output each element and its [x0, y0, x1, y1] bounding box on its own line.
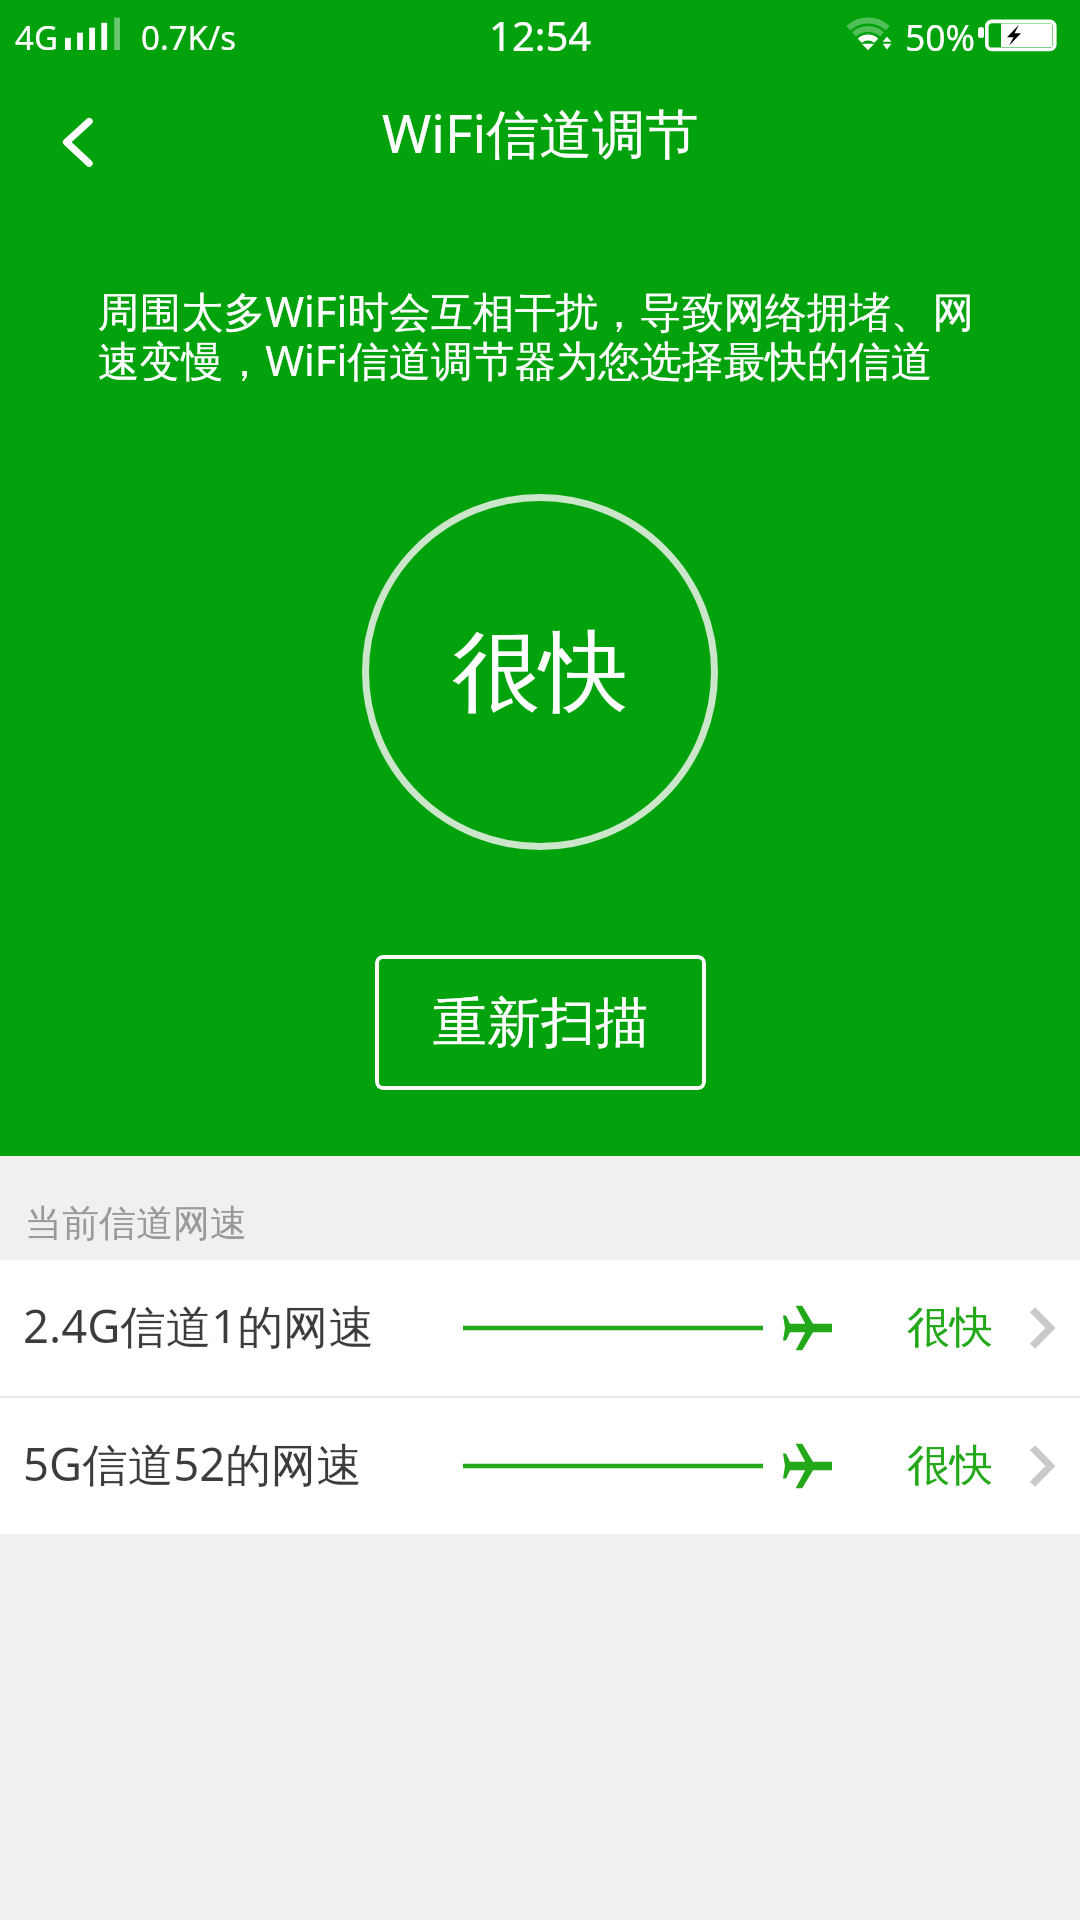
staticText: 重新扫描: [433, 989, 649, 1057]
staticText: WiFi信道调节: [382, 96, 699, 168]
staticText: 2.4G信道1的网速: [23, 1294, 374, 1356]
staticText: 5G信道52的网速: [23, 1432, 362, 1494]
button[interactable]: 2.4G信道1的网速: [0, 1260, 1080, 1396]
staticText: 12:54: [489, 8, 592, 62]
other: Details: [1027, 1440, 1059, 1492]
staticText: 很快: [452, 617, 628, 728]
staticText: 周围太多WiFi时会互相干扰，导致网络拥堵、网速变慢，WiFi信道调节器为您选择…: [98, 282, 988, 388]
staticText: 很快: [907, 1301, 993, 1355]
staticText: 当前信道网速: [25, 1200, 247, 1247]
other: Details: [1027, 1302, 1059, 1354]
staticText: 4G: [15, 15, 58, 60]
button[interactable]: 重新扫描: [375, 955, 706, 1090]
staticText: 50%: [905, 13, 976, 61]
button[interactable]: Back: [0, 72, 140, 200]
staticText: 0.7K/s: [141, 15, 237, 60]
button[interactable]: 5G信道52的网速: [0, 1398, 1080, 1534]
staticText: 很快: [907, 1439, 993, 1493]
